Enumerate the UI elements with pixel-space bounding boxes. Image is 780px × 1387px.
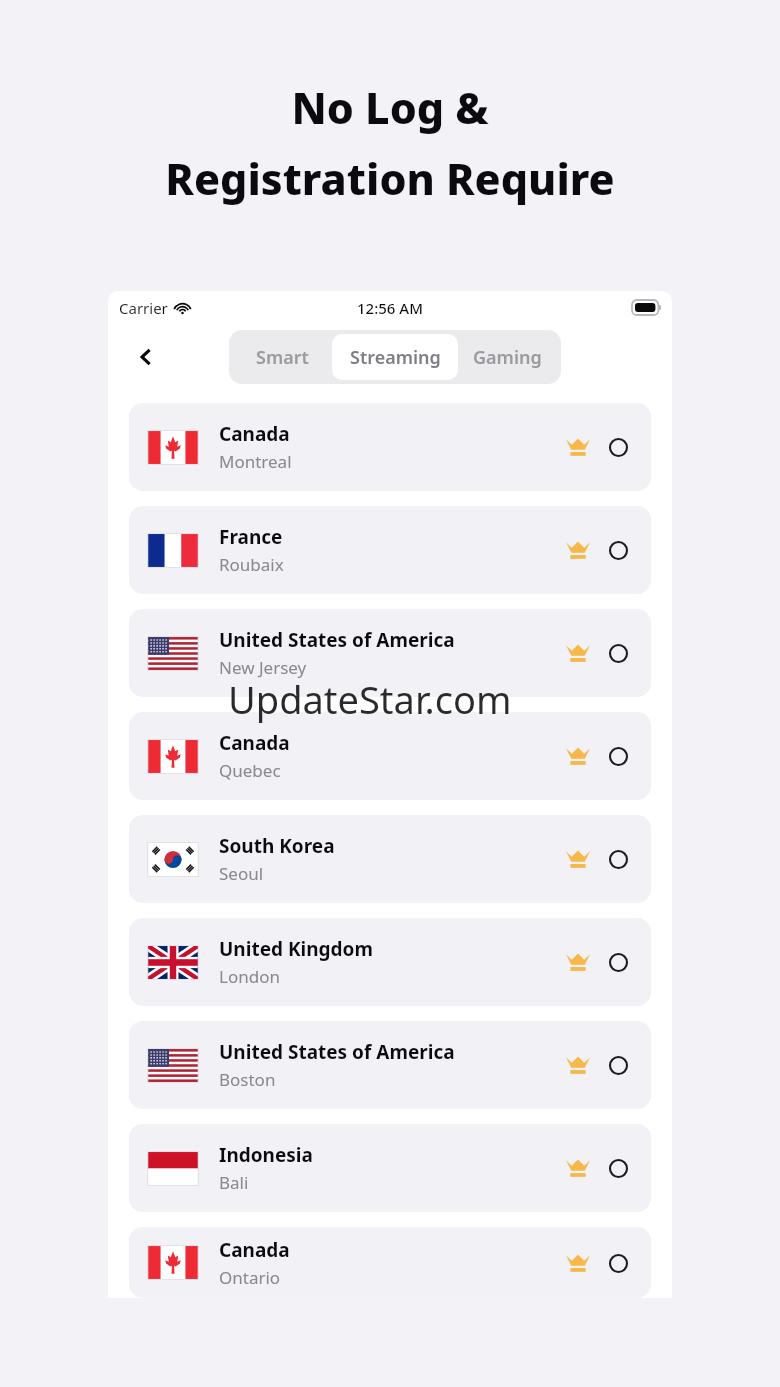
button[interactable]: United States of America [129, 609, 651, 697]
other: Premium [561, 636, 595, 670]
staticText: Carrier [119, 298, 168, 318]
staticText: Ontario [219, 1266, 281, 1289]
staticText: Boston [219, 1068, 276, 1091]
button[interactable]: United Kingdom [129, 918, 651, 1006]
other: Premium [561, 1151, 595, 1185]
other: Premium [561, 739, 595, 773]
staticText: Indonesia [219, 1142, 313, 1168]
button[interactable]: Select Canada Montreal [603, 432, 633, 462]
other: Premium [561, 430, 595, 464]
staticText: Canada [219, 1237, 290, 1263]
staticText: United States of America [219, 627, 455, 653]
button[interactable]: South Korea [129, 815, 651, 903]
button[interactable]: Gaming [458, 334, 557, 380]
button[interactable]: Streaming [332, 334, 458, 380]
staticText: Canada [219, 730, 290, 756]
button[interactable]: Select Indonesia Bali [603, 1153, 633, 1183]
button[interactable]: United States of America [129, 1021, 651, 1109]
button[interactable]: Canada [129, 712, 651, 800]
button[interactable]: Select South Korea Seoul [603, 844, 633, 874]
other: Premium [561, 1048, 595, 1082]
staticText: No Log & [291, 78, 489, 137]
staticText: United Kingdom [219, 936, 373, 962]
button[interactable]: Indonesia [129, 1124, 651, 1212]
button[interactable]: Select United States of America Boston [603, 1050, 633, 1080]
staticText: Bali [219, 1171, 249, 1194]
staticText: Canada [219, 421, 290, 447]
staticText: Streaming [350, 345, 441, 370]
other: Premium [561, 945, 595, 979]
button[interactable]: Canada [129, 1227, 651, 1298]
button[interactable]: Select France Roubaix [603, 535, 633, 565]
staticText: Gaming [473, 345, 542, 370]
staticText: New Jersey [219, 656, 307, 679]
button[interactable]: Select Canada Quebec [603, 741, 633, 771]
other: Premium [561, 842, 595, 876]
button[interactable]: Smart [233, 334, 332, 380]
staticText: 12:56 AM [357, 298, 423, 318]
staticText: France [219, 524, 283, 550]
staticText: Seoul [219, 862, 264, 885]
button[interactable]: Canada [129, 403, 651, 491]
staticText: Registration Require [165, 149, 615, 208]
staticText: UpdateStar.com [228, 673, 512, 725]
staticText: Montreal [219, 450, 292, 473]
button[interactable]: France [129, 506, 651, 594]
staticText: United States of America [219, 1039, 455, 1065]
staticText: South Korea [219, 833, 335, 859]
staticText: Quebec [219, 759, 281, 782]
other: Premium [561, 533, 595, 567]
button[interactable]: Select United Kingdom London [603, 947, 633, 977]
other: Premium [561, 1246, 595, 1280]
staticText: London [219, 965, 280, 988]
button[interactable]: Select Canada Ontario [603, 1248, 633, 1278]
staticText: Roubaix [219, 553, 284, 576]
staticText: Smart [256, 345, 309, 370]
button[interactable]: Select United States of America New Jers… [603, 638, 633, 668]
button[interactable]: Back [126, 337, 166, 377]
